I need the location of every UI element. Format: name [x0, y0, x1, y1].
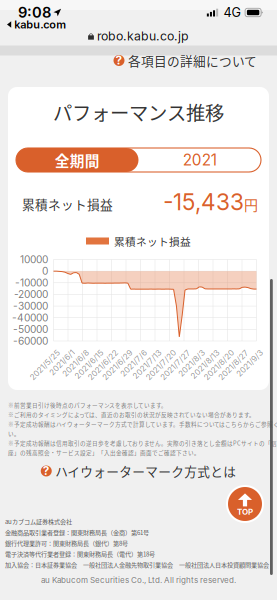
button[interactable]: Back to top — [226, 485, 264, 523]
staticText: robo.kabu.co.jp — [97, 29, 189, 43]
button[interactable]: ? — [113, 51, 257, 70]
staticText: 10000 — [20, 253, 48, 266]
staticText: 2021/6/15 — [62, 348, 99, 357]
staticText: TOP — [237, 507, 253, 517]
staticText: 累積ネット損益 — [114, 233, 191, 249]
staticText: 2021/6/1 — [38, 348, 70, 357]
staticText: 円 — [244, 194, 258, 214]
staticText: -40000 — [12, 312, 48, 324]
staticText: 2021/6/22 — [74, 348, 113, 357]
staticText: 2021/8/27 — [205, 348, 244, 357]
staticText: ? — [115, 53, 122, 67]
staticText: auカブコム証券株式会社 — [5, 517, 72, 526]
button[interactable]: ? — [41, 462, 236, 480]
staticText: 2021/7/27 — [147, 348, 186, 357]
staticText: パフォーマンス推移 — [53, 98, 224, 126]
staticText: 2021/8/20 — [190, 348, 229, 357]
staticText: 2021/5/25 — [16, 348, 55, 357]
staticText: ※前営業日引け後時点のパフォーマンスを表示しています。 — [8, 401, 167, 409]
staticText: 9:08 — [18, 4, 51, 21]
button[interactable]: 全期間 — [16, 148, 138, 172]
staticText: 2021/6/29 — [89, 348, 128, 357]
staticText: 2021/7/13 — [120, 348, 157, 357]
staticText: 2021/9/3 — [224, 348, 258, 357]
staticText: kabu.com — [14, 18, 66, 31]
staticText: ※予定成功報酬は信用取引の逆日歩を考慮しておりません。実際の引き落とし金額はPC… — [8, 439, 277, 447]
staticText: -10000 — [15, 277, 48, 289]
button[interactable]: 2021 — [138, 148, 261, 172]
staticText: 2021 — [183, 151, 217, 169]
staticText: 4G — [223, 5, 240, 20]
staticText: 累積ネット損益 — [22, 195, 113, 213]
staticText: い。 — [8, 429, 20, 438]
staticText: ハイウォーターマーク方式とは — [55, 462, 236, 480]
button[interactable]: kabu.com — [7, 18, 66, 31]
staticText: -20000 — [14, 288, 48, 301]
staticText: 2021/6/8 — [50, 348, 84, 357]
staticText: ? — [43, 464, 50, 478]
staticText: 座」の残高照会・サービス設定」「入出金確認」画面でご確認下さい。 — [8, 449, 200, 457]
staticText: 銀行代理業許可：関東財務局長（銀代）第8号 — [5, 539, 128, 547]
staticText: -50000 — [13, 323, 48, 335]
staticText: -30000 — [13, 300, 48, 312]
staticText: 金融商品取引業者登録：関東財務局長（金商）第61号 — [5, 528, 149, 537]
staticText: 0 — [42, 265, 48, 277]
staticText: -15,433 — [163, 188, 244, 216]
button[interactable]: robo.kabu.co.jp — [88, 29, 189, 43]
staticText: -60000 — [13, 335, 48, 347]
staticText: 2021/8/3 — [166, 348, 200, 357]
staticText: au Kabucom Securities Co., Ltd. All righ… — [41, 575, 236, 585]
staticText: 各項目の詳細について — [128, 51, 257, 70]
staticText: 電子決済等代行業者登録：関東財務局長（電代）第18号 — [5, 549, 155, 558]
staticText: 加入協会：日本証券業協会 一般社団法人金融先物取引業協会 一般社団法人日本投資顧… — [5, 560, 269, 569]
staticText: 2021/8/13 — [178, 348, 215, 357]
staticText: ※ご利用のタイミングによっては、直近のお取引の状況が反映されていない場合がありま… — [8, 410, 255, 419]
staticText: 2021/7/20 — [132, 348, 171, 357]
staticText: ※予定成功報酬はハイウォーターマーク方式で計算しています。手数料についてはこちら… — [8, 420, 277, 428]
staticText: 全期間 — [55, 149, 100, 171]
staticText: 2021/7/6 — [108, 348, 142, 357]
